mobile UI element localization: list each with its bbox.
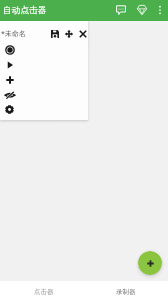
button[interactable]: 点击器 [0,281,84,300]
button[interactable]: Premium [133,0,151,21]
button[interactable]: Play [2,57,17,72]
button[interactable]: Record [2,42,17,57]
button[interactable]: Move [62,27,76,41]
button[interactable]: 录制器 [84,281,168,300]
button[interactable]: Save [48,27,62,41]
button[interactable]: Add [138,251,162,275]
staticText: 录制器 [116,288,136,296]
staticText: 点击器 [34,288,54,296]
staticText: *未命名 [1,29,26,39]
button[interactable]: Feedback [112,0,130,21]
button[interactable]: Hide [2,87,17,102]
button[interactable]: Add action [2,72,17,87]
staticText: 自动点击器 [3,5,47,16]
button[interactable]: Close [76,27,90,41]
button[interactable]: Settings [2,102,17,117]
button[interactable]: More options [151,0,168,21]
